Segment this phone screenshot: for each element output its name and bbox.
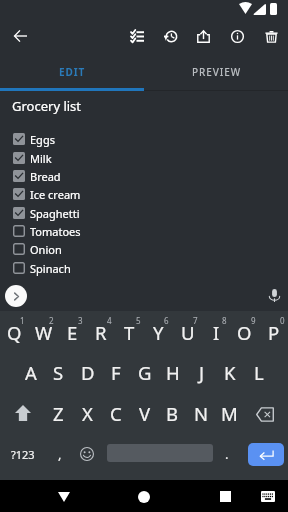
button[interactable]: Shift (3, 393, 42, 433)
button[interactable]: Eggs (8, 130, 148, 148)
staticText: Bread (30, 169, 61, 184)
button[interactable]: Ice cream (8, 185, 148, 203)
staticText: P (268, 320, 280, 345)
staticText: N (194, 401, 209, 426)
button[interactable]: Info (222, 22, 252, 51)
staticText: I (213, 320, 220, 345)
staticText: Grocery list (12, 97, 82, 115)
button[interactable]: . (213, 434, 241, 474)
staticText: PREVIEW (192, 65, 241, 79)
staticText: . (225, 445, 229, 463)
staticText: Eggs (30, 132, 55, 147)
button[interactable]: Share (188, 22, 218, 51)
button[interactable]: History (155, 22, 185, 51)
staticText: C (110, 401, 122, 426)
staticText: S (53, 360, 64, 385)
button[interactable]: J (187, 352, 216, 392)
staticText: D (81, 360, 95, 385)
button[interactable]: Bread (8, 167, 148, 185)
button[interactable]: , (45, 434, 74, 474)
button[interactable]: Milk (8, 149, 148, 167)
button[interactable]: Emoji (73, 434, 101, 474)
button[interactable]: E (58, 312, 87, 352)
staticText: R (95, 320, 107, 345)
button[interactable]: H (158, 352, 187, 392)
button[interactable]: Q (0, 312, 29, 352)
staticText: O (237, 320, 252, 345)
button[interactable]: T (115, 312, 144, 352)
button[interactable]: Keyboard (253, 481, 282, 512)
button[interactable]: Onion (8, 240, 148, 258)
staticText: 3 (78, 315, 83, 326)
button[interactable]: Enter (248, 443, 284, 466)
staticText: Onion (30, 242, 62, 257)
staticText: Spinach (30, 261, 71, 276)
button[interactable]: EDIT (0, 54, 144, 89)
staticText: ?123 (11, 447, 35, 462)
button[interactable]: B (158, 393, 187, 433)
button[interactable]: F (101, 352, 130, 392)
button[interactable]: Back (49, 481, 78, 512)
button[interactable]: ?123 (2, 434, 44, 474)
staticText: L (254, 360, 264, 385)
staticText: Q (7, 320, 22, 345)
button[interactable]: C (101, 393, 130, 433)
staticText: A (25, 360, 37, 385)
button[interactable]: Backspace (246, 394, 284, 434)
button[interactable]: X (73, 393, 102, 433)
staticText: 4 (107, 315, 112, 326)
staticText: 0 (280, 315, 285, 326)
button[interactable]: Z (44, 393, 73, 433)
button[interactable]: Delete (256, 22, 286, 51)
staticText: V (139, 401, 151, 426)
button[interactable]: Home (129, 481, 159, 512)
staticText: 9 (251, 315, 256, 326)
button[interactable]: Voice input (264, 285, 285, 306)
button[interactable]: O (230, 312, 259, 352)
button[interactable]: PREVIEW (144, 54, 288, 89)
button[interactable]: L (244, 352, 273, 392)
button[interactable]: R (86, 312, 115, 352)
button[interactable]: I (202, 312, 231, 352)
button[interactable]: Spaghetti (8, 204, 148, 222)
staticText: F (111, 360, 121, 385)
staticText: M (221, 401, 238, 426)
staticText: W (35, 320, 53, 345)
staticText: 2 (49, 315, 54, 326)
button[interactable]: V (130, 393, 159, 433)
button[interactable]: P (259, 312, 288, 352)
staticText: G (138, 360, 152, 385)
staticText: 7 (193, 315, 198, 326)
staticText: E (67, 320, 78, 345)
button[interactable]: Checklist (122, 22, 152, 51)
staticText: , (58, 445, 62, 463)
staticText: 5 (136, 315, 141, 326)
staticText: Tomatoes (30, 224, 81, 239)
button[interactable]: W (29, 312, 58, 352)
button[interactable]: K (215, 352, 244, 392)
button[interactable]: M (215, 393, 244, 433)
button[interactable]: U (173, 312, 202, 352)
staticText: T (124, 320, 135, 345)
staticText: Ice cream (30, 187, 81, 202)
button[interactable]: Spinach (8, 259, 148, 277)
staticText: 8 (222, 315, 227, 326)
button[interactable]: Next (5, 285, 27, 307)
button[interactable]: Back (6, 22, 34, 50)
button[interactable]: N (187, 393, 216, 433)
button[interactable]: Tomatoes (8, 222, 148, 240)
staticText: Y (153, 320, 164, 345)
button[interactable]: S (44, 352, 73, 392)
staticText: K (224, 360, 236, 385)
button[interactable]: D (73, 352, 102, 392)
staticText: B (166, 401, 179, 426)
button[interactable]: G (130, 352, 159, 392)
button[interactable]: A (16, 352, 45, 392)
staticText: Z (53, 401, 64, 426)
button[interactable]: Recents (210, 481, 240, 512)
staticText: X (82, 401, 93, 426)
staticText: Spaghetti (30, 206, 80, 221)
staticText: H (166, 360, 180, 385)
button[interactable]: Y (144, 312, 173, 352)
